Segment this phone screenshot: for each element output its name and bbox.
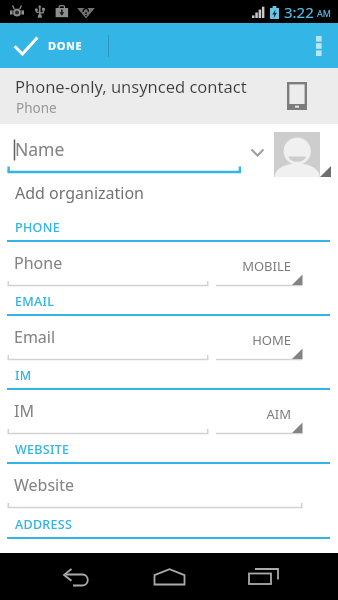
button[interactable]: Name xyxy=(15,137,65,161)
button[interactable]: More options xyxy=(300,23,338,68)
staticText: 3:22 xyxy=(284,2,314,22)
button[interactable]: Email xyxy=(14,326,199,352)
button[interactable]: Website xyxy=(14,474,199,500)
staticText: EMAIL xyxy=(15,293,55,310)
staticText: ADDRESS xyxy=(15,516,73,533)
staticText: WEBSITE xyxy=(15,441,70,458)
button[interactable]: ADDRESS xyxy=(0,513,338,543)
button[interactable]: HOME xyxy=(221,331,291,351)
staticText: Phone-only, unsynced contact xyxy=(15,75,247,97)
button[interactable]: Recent apps xyxy=(216,553,311,600)
button[interactable]: AIM xyxy=(221,405,291,425)
staticText: AM xyxy=(317,7,331,19)
button[interactable]: DONE xyxy=(0,23,101,68)
button[interactable]: Phone xyxy=(14,252,199,278)
button[interactable]: Add contact photo xyxy=(274,132,320,177)
button[interactable]: MOBILE xyxy=(221,257,291,277)
staticText: IM xyxy=(15,367,32,384)
button[interactable]: Home xyxy=(122,553,217,600)
button[interactable]: IM xyxy=(14,400,199,426)
button[interactable]: Add organization xyxy=(15,182,144,204)
staticText: DONE xyxy=(48,38,83,53)
staticText: Phone xyxy=(16,99,57,117)
button[interactable]: Phone-only, unsynced contact xyxy=(0,68,338,124)
staticText: PHONE xyxy=(15,219,60,236)
button[interactable]: Back xyxy=(27,553,122,600)
